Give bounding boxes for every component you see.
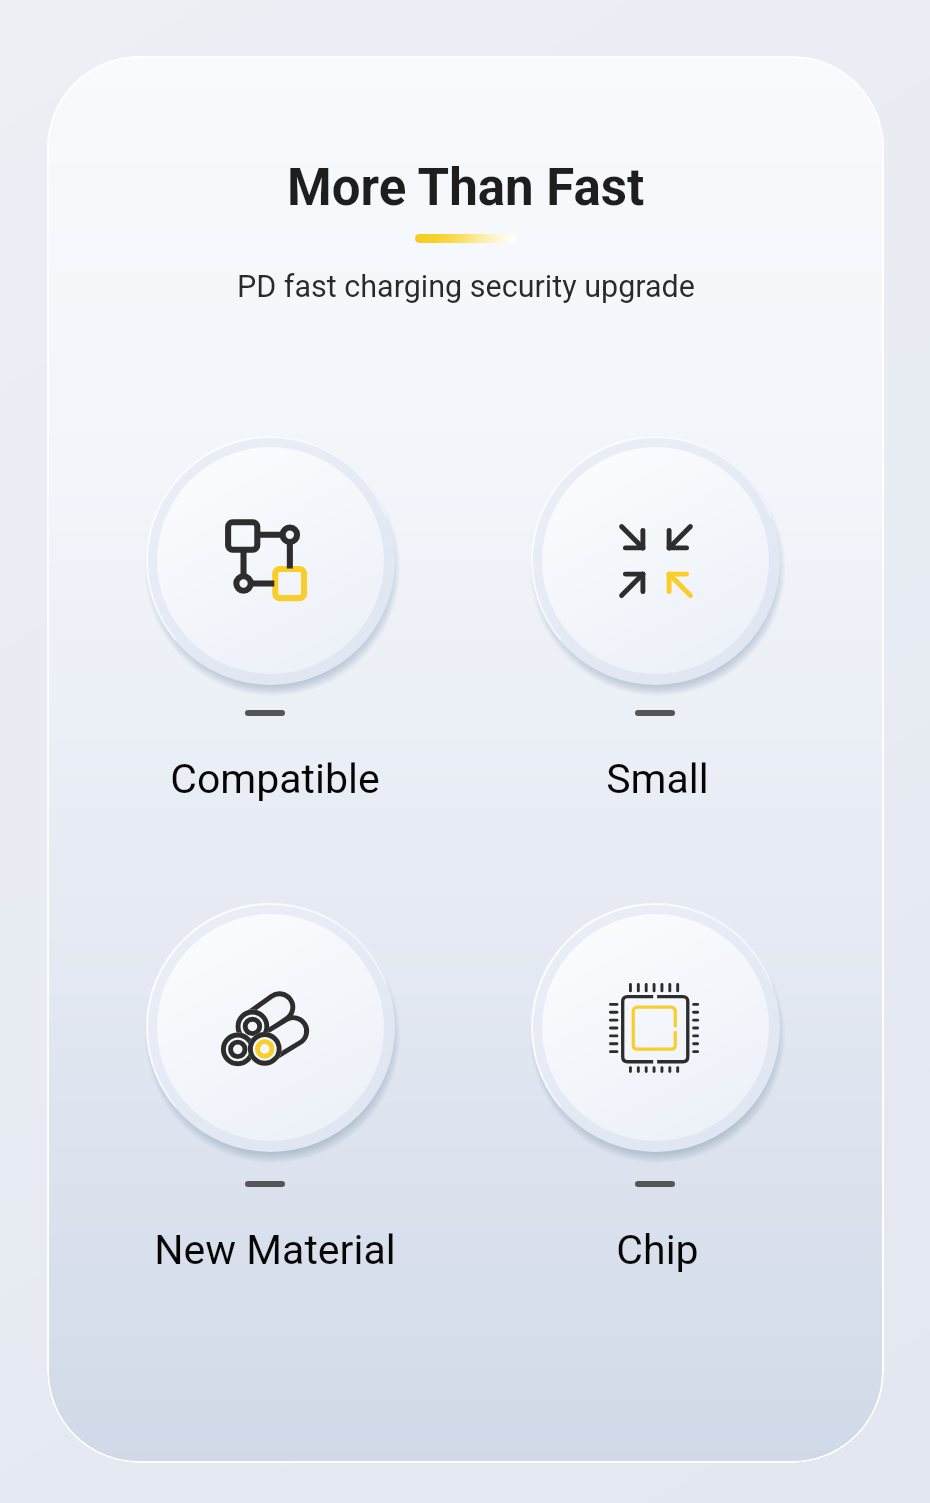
staticText: Chip [616,1226,699,1274]
staticText: Compatible [170,755,380,803]
button[interactable]: Small [531,436,780,803]
staticText: More Than Fast [287,158,645,218]
staticText: Small [606,755,709,803]
staticText: New Material [154,1226,396,1274]
button[interactable]: Chip [531,903,780,1274]
button[interactable]: Compatible [146,436,395,803]
staticText: PD fast charging security upgrade [237,269,695,305]
button[interactable]: New Material [146,903,395,1274]
